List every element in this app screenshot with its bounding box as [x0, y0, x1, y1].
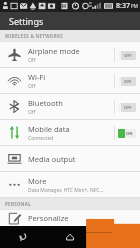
- staticText: Personalize: [28, 213, 69, 223]
- staticText: Off: [28, 83, 36, 90]
- staticText: PERSONAL: [5, 201, 31, 207]
- staticText: Airplane mode: [28, 46, 80, 56]
- staticText: Media output: [28, 154, 76, 164]
- staticText: More: [28, 176, 47, 186]
- staticText: Settings: [9, 15, 44, 27]
- button[interactable]: Wi-Fi: [0, 68, 140, 94]
- button[interactable]: On: [114, 120, 136, 145]
- button[interactable]: More: [0, 172, 140, 198]
- button[interactable]: Off: [118, 51, 136, 60]
- staticText: 8:37: [116, 1, 130, 11]
- button[interactable]: Home: [46, 226, 93, 248]
- button[interactable]: Off: [114, 68, 136, 93]
- button[interactable]: Personalize: [0, 210, 140, 226]
- staticText: PM: [131, 3, 138, 9]
- staticText: WIRELESS & NETWORKS: [5, 33, 64, 39]
- button[interactable]: Recent apps: [93, 226, 140, 248]
- button[interactable]: Bluetooth: [0, 94, 140, 120]
- button[interactable]: Off: [114, 94, 136, 119]
- staticText: OFF: [124, 79, 132, 84]
- staticText: Data Manager, HTC Mini+, NFC...: [28, 187, 104, 194]
- button[interactable]: Back: [0, 226, 46, 248]
- staticText: Bluetooth: [28, 98, 63, 108]
- button[interactable]: Airplane mode: [0, 42, 140, 68]
- staticText: Off: [28, 57, 36, 64]
- staticText: ON: [126, 131, 133, 136]
- button[interactable]: Mobile data: [0, 120, 140, 146]
- button[interactable]: On: [118, 129, 136, 138]
- staticText: OFF: [124, 53, 132, 58]
- button[interactable]: Off: [114, 42, 136, 67]
- button[interactable]: Off: [118, 77, 136, 86]
- staticText: Off: [28, 109, 36, 116]
- staticText: OFF: [124, 105, 132, 110]
- staticText: Connected: [28, 135, 54, 142]
- button[interactable]: Off: [118, 103, 136, 112]
- button[interactable]: Media output: [0, 146, 140, 172]
- staticText: Mobile data: [28, 124, 70, 134]
- staticText: Wi-Fi: [28, 72, 46, 82]
